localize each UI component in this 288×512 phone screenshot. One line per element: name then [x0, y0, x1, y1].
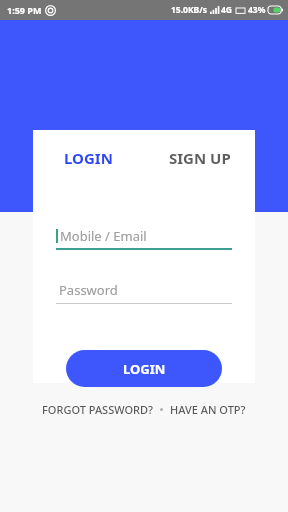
staticText: HAVE AN OTP?	[170, 402, 246, 417]
button[interactable]: Mobile / Email	[56, 222, 232, 250]
staticText: Password	[59, 281, 118, 299]
staticText: 4G	[221, 4, 233, 16]
staticText: SIGN UP	[169, 148, 231, 168]
button[interactable]: SIGN UP	[144, 142, 255, 174]
button[interactable]: HAVE AN OTP?	[168, 398, 248, 421]
staticText: Mobile / Email	[60, 227, 147, 245]
staticText: FORGOT PASSWORD?	[42, 402, 153, 417]
button[interactable]: LOGIN	[66, 350, 222, 387]
button[interactable]: FORGOT PASSWORD?	[40, 398, 155, 421]
staticText: 43%	[248, 4, 266, 16]
button[interactable]: LOGIN	[33, 142, 144, 174]
staticText: LOGIN	[123, 360, 166, 378]
button[interactable]: Password	[56, 276, 232, 304]
staticText: 15.0KB/s	[171, 4, 208, 16]
staticText: LOGIN	[64, 148, 113, 168]
staticText: 1:59 PM	[7, 4, 42, 16]
